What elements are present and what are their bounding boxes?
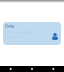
staticText: Delta	[5, 23, 14, 29]
staticText: Gate 12A · Seat 14C	[5, 31, 33, 34]
button[interactable]: Tab	[0, 66, 21, 72]
button[interactable]: Tab	[21, 66, 43, 72]
button[interactable]: Boarding pass	[3, 20, 61, 47]
button[interactable]: Tab	[43, 66, 64, 72]
